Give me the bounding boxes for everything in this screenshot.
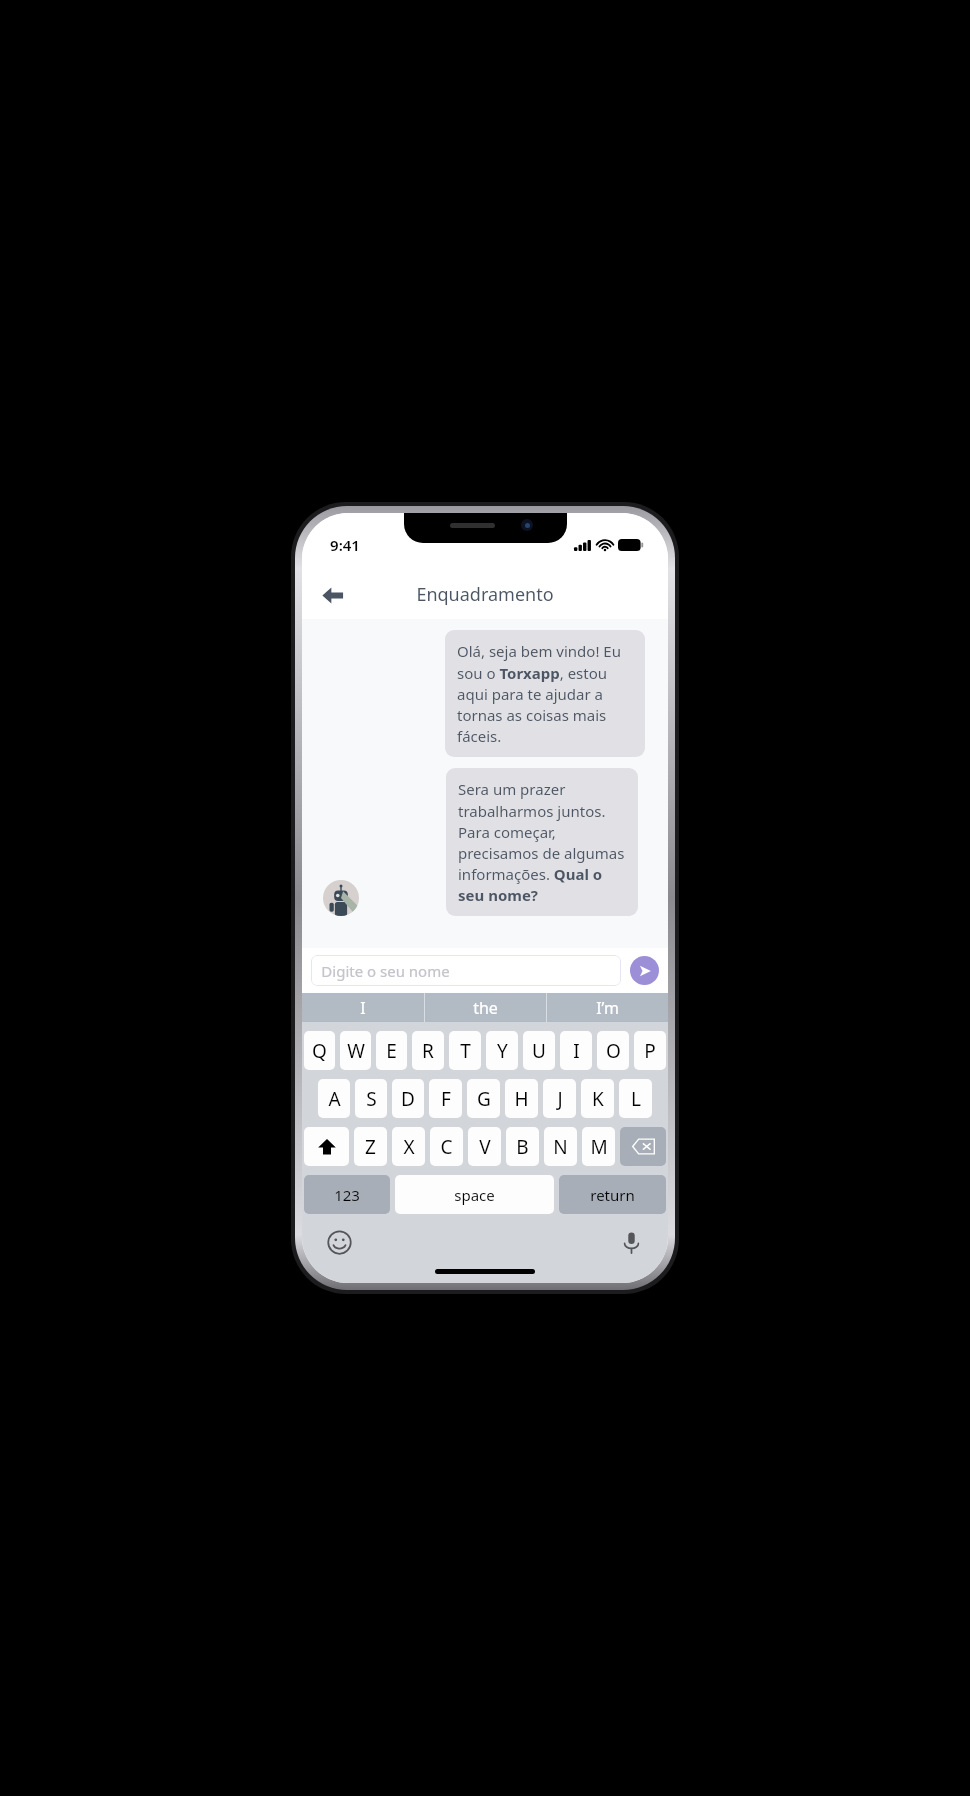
button[interactable]: Y [486,1031,518,1070]
staticText: A [328,1086,341,1112]
staticText: Enquadramento [416,582,554,607]
button[interactable]: Dictation [615,1226,647,1258]
staticText: I [360,997,366,1019]
button[interactable]: X [392,1127,425,1166]
staticText: 123 [334,1185,360,1205]
button[interactable]: P [634,1031,666,1070]
button[interactable]: D [392,1079,424,1118]
button[interactable]: Z [354,1127,387,1166]
staticText: Digite o seu nome [321,961,450,981]
button[interactable]: Digite o seu nome [311,955,621,986]
button[interactable]: I’m [547,993,668,1022]
staticText: K [592,1086,604,1112]
staticText: space [454,1185,495,1205]
staticText: Sera um prazer trabalharmos juntos. Para… [458,779,626,905]
staticText: F [441,1086,451,1112]
button[interactable]: G [467,1079,500,1118]
staticText: M [590,1134,608,1160]
button[interactable]: T [449,1031,481,1070]
staticText: 9:41 [330,535,360,555]
button[interactable]: W [340,1031,371,1070]
button[interactable]: Olá, seja bem vindo! Eu sou o Torxapp, e… [445,630,645,757]
button[interactable]: Emoji [323,1226,355,1258]
staticText: U [532,1038,546,1064]
staticText: T [460,1038,471,1064]
staticText: L [631,1086,641,1112]
staticText: V [479,1134,491,1160]
button[interactable]: F [429,1079,462,1118]
staticText: J [557,1086,563,1112]
staticText: return [590,1185,635,1205]
button[interactable]: Back [309,572,355,618]
button[interactable]: N [544,1127,577,1166]
staticText: E [386,1038,397,1064]
button[interactable]: S [355,1079,387,1118]
staticText: O [606,1038,621,1064]
staticText: H [514,1086,529,1112]
staticText: X [403,1134,415,1160]
staticText: C [440,1134,453,1160]
staticText: N [553,1134,568,1160]
button[interactable]: M [582,1127,615,1166]
button[interactable]: O [597,1031,629,1070]
button[interactable]: U [523,1031,555,1070]
staticText: S [366,1086,377,1112]
button[interactable]: Shift [304,1127,349,1166]
button[interactable]: the [425,993,546,1022]
button[interactable]: Q [304,1031,335,1070]
staticText: Y [497,1038,508,1064]
button[interactable]: B [506,1127,539,1166]
staticText: R [422,1038,434,1064]
button[interactable]: 123 [304,1175,390,1214]
button[interactable]: A [318,1079,350,1118]
staticText: Olá, seja bem vindo! Eu sou o Torxapp, e… [457,641,633,746]
button[interactable]: L [619,1079,652,1118]
staticText: I [573,1038,580,1064]
button[interactable]: H [505,1079,538,1118]
button[interactable]: I [560,1031,592,1070]
staticText: the [473,997,498,1019]
button[interactable]: Sera um prazer trabalharmos juntos. Para… [446,768,638,916]
staticText: G [477,1086,491,1112]
staticText: P [644,1038,656,1064]
button[interactable]: Backspace [620,1127,666,1166]
button[interactable]: E [376,1031,407,1070]
button[interactable]: V [468,1127,501,1166]
button[interactable]: return [559,1175,666,1214]
button[interactable]: C [430,1127,463,1166]
button[interactable]: Send [630,956,659,985]
button[interactable]: J [543,1079,576,1118]
staticText: B [516,1134,529,1160]
staticText: D [401,1086,415,1112]
button[interactable]: K [581,1079,614,1118]
staticText: I’m [596,997,619,1019]
staticText: Z [365,1134,376,1160]
staticText: W [347,1038,365,1064]
button[interactable]: space [395,1175,554,1214]
staticText: Q [312,1038,327,1064]
button[interactable]: R [412,1031,444,1070]
button[interactable]: I [302,993,424,1022]
